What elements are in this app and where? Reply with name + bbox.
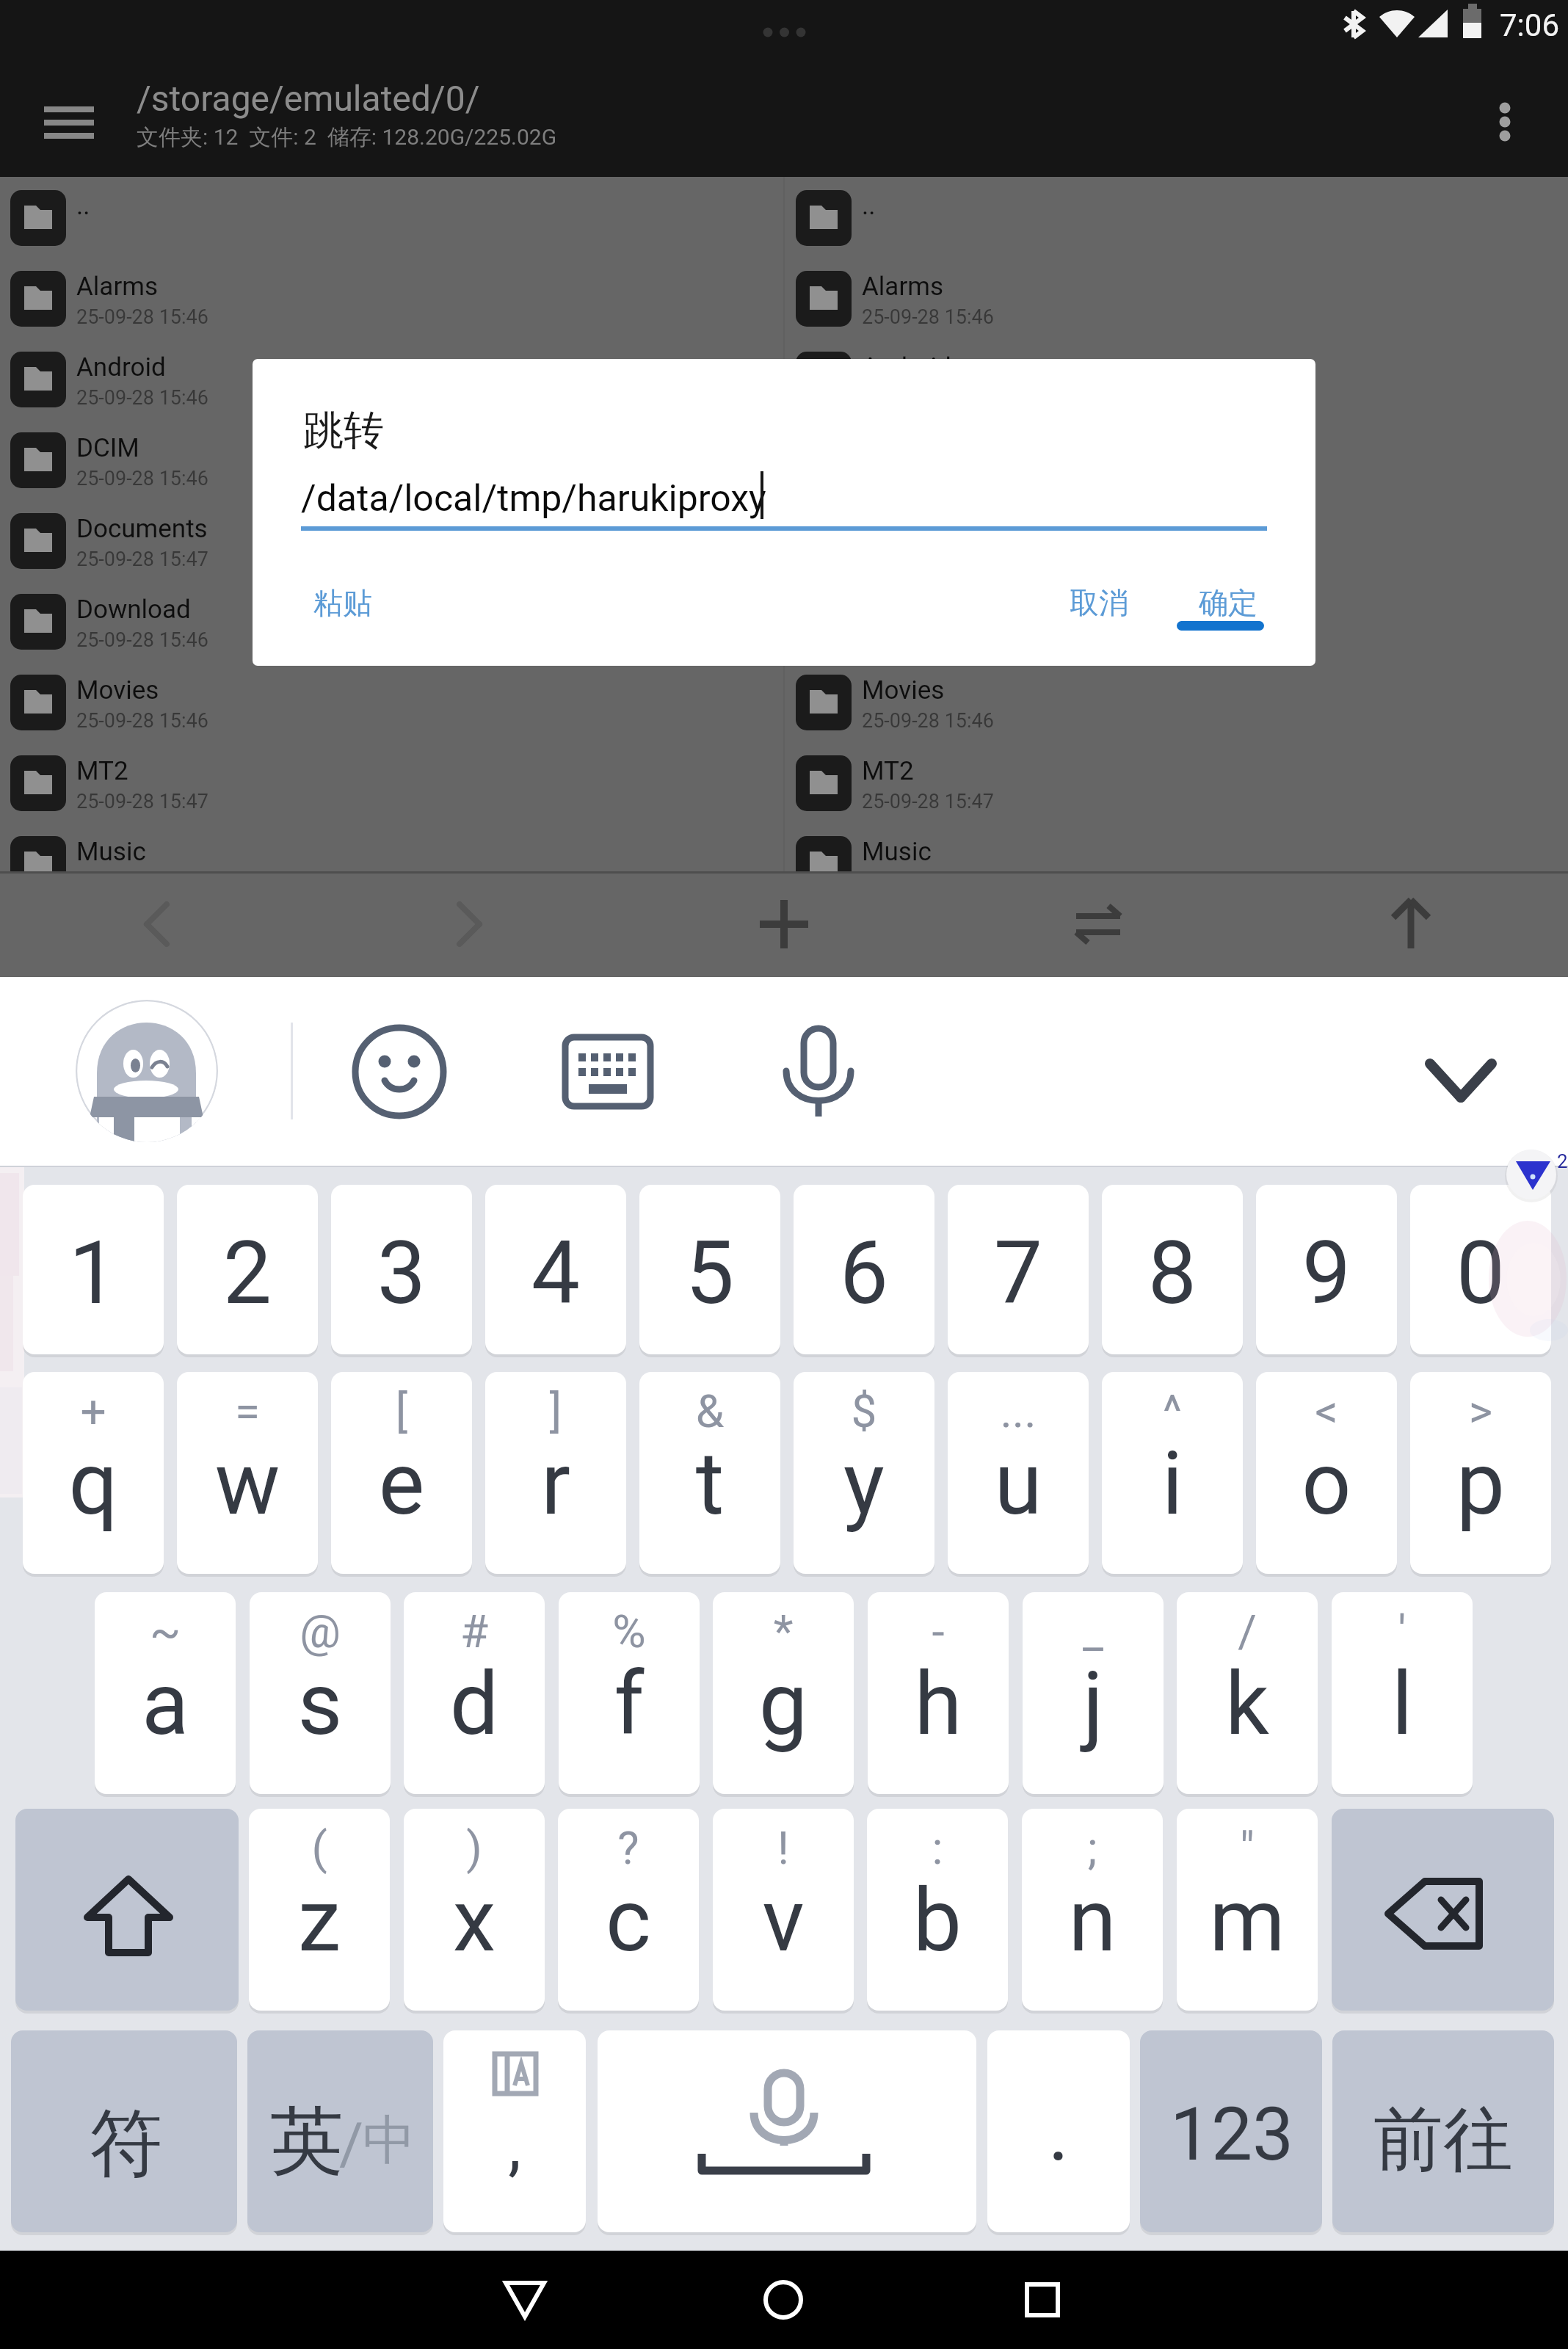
button[interactable]: Shift <box>15 1809 239 2011</box>
button[interactable] <box>284 579 402 653</box>
button[interactable]: Up <box>1332 882 1489 967</box>
button[interactable] <box>0 823 783 871</box>
button[interactable] <box>794 1185 934 1354</box>
button[interactable] <box>785 742 1568 823</box>
button[interactable] <box>1040 579 1158 653</box>
button[interactable] <box>785 177 1568 258</box>
button[interactable] <box>639 1372 780 1574</box>
button[interactable] <box>95 1592 236 1794</box>
button[interactable]: English / Chinese <box>247 2030 433 2232</box>
button[interactable] <box>331 1372 472 1574</box>
button[interactable]: Home <box>725 2261 842 2349</box>
button[interactable]: More options <box>1483 100 1527 144</box>
button[interactable] <box>713 1592 854 1794</box>
button[interactable] <box>1102 1372 1243 1574</box>
button[interactable] <box>785 823 1568 871</box>
button[interactable] <box>1177 1592 1318 1794</box>
button[interactable] <box>23 1372 164 1574</box>
button[interactable] <box>948 1372 1089 1574</box>
staticText: 25-09-28 15:47 <box>862 790 994 813</box>
staticText: * <box>710 1605 857 1658</box>
staticText: Movies <box>76 675 159 705</box>
button[interactable] <box>1332 1592 1473 1794</box>
button[interactable] <box>785 661 1568 742</box>
button[interactable] <box>1102 1185 1243 1354</box>
staticText: i <box>1099 1434 1246 1535</box>
button[interactable]: Comma <box>443 2030 586 2232</box>
staticText: , <box>441 2107 588 2185</box>
button[interactable] <box>868 1592 1009 1794</box>
button[interactable] <box>867 1809 1008 2011</box>
button[interactable] <box>713 1809 854 2011</box>
button[interactable] <box>0 177 783 258</box>
button[interactable]: Space <box>598 2030 976 2232</box>
button[interactable] <box>404 1809 545 2011</box>
button[interactable] <box>23 1185 164 1354</box>
button[interactable] <box>1169 579 1287 653</box>
button[interactable] <box>785 581 1568 661</box>
button[interactable]: Recent apps <box>984 2261 1101 2349</box>
staticText: 文件夹: 12 文件: 2 储存: 128.20G/225.02G <box>137 123 557 151</box>
button[interactable] <box>785 258 1568 338</box>
button[interactable] <box>177 1372 318 1574</box>
button[interactable] <box>1410 1372 1551 1574</box>
button[interactable]: Period <box>987 2030 1130 2232</box>
staticText: Android <box>862 352 951 382</box>
button[interactable]: Emoji <box>348 1020 451 1123</box>
button[interactable] <box>785 338 1568 419</box>
button[interactable] <box>794 1372 934 1574</box>
button[interactable]: New <box>705 882 863 967</box>
button[interactable] <box>1410 1185 1551 1354</box>
staticText: # <box>401 1605 548 1658</box>
staticText: ] <box>482 1384 629 1438</box>
button[interactable] <box>0 338 783 419</box>
button[interactable] <box>177 1185 318 1354</box>
button[interactable]: Numbers <box>1140 2030 1322 2232</box>
button[interactable] <box>1256 1372 1397 1574</box>
button[interactable] <box>639 1185 780 1354</box>
staticText: 7:06 <box>1500 7 1559 43</box>
button[interactable]: Back <box>466 2261 584 2349</box>
button[interactable] <box>331 1185 472 1354</box>
button[interactable] <box>0 500 783 581</box>
button[interactable] <box>785 500 1568 581</box>
staticText: 123 <box>1122 2091 1342 2177</box>
button[interactable] <box>250 1592 391 1794</box>
staticText: 3 <box>328 1223 475 1324</box>
button[interactable]: Go <box>1332 2030 1554 2232</box>
staticText: .. <box>862 191 876 221</box>
staticText: $ <box>791 1384 937 1438</box>
button[interactable] <box>559 1592 700 1794</box>
button[interactable] <box>558 1809 699 2011</box>
staticText: ) <box>401 1821 548 1875</box>
button[interactable] <box>0 742 783 823</box>
button[interactable]: IME profile <box>76 1000 218 1142</box>
button[interactable]: Voice input <box>774 1025 863 1121</box>
button[interactable] <box>1256 1185 1397 1354</box>
staticText: . <box>985 2085 1132 2179</box>
button[interactable] <box>485 1372 626 1574</box>
button[interactable] <box>785 419 1568 500</box>
button[interactable] <box>1023 1592 1164 1794</box>
button[interactable] <box>0 419 783 500</box>
button[interactable] <box>1022 1809 1163 2011</box>
button[interactable] <box>249 1809 390 2011</box>
button[interactable]: Navigation menu <box>43 100 95 144</box>
button[interactable] <box>485 1185 626 1354</box>
staticText: s <box>247 1654 393 1755</box>
staticText: p <box>1407 1434 1554 1535</box>
button[interactable]: Hide keyboard <box>1424 1058 1498 1106</box>
button[interactable]: Backspace <box>1332 1809 1554 2011</box>
button[interactable] <box>0 661 783 742</box>
button[interactable] <box>0 581 783 661</box>
button[interactable]: Symbols <box>11 2030 237 2232</box>
button[interactable] <box>0 258 783 338</box>
button[interactable] <box>948 1185 1089 1354</box>
button[interactable]: Keyboard layout <box>562 1036 653 1108</box>
button[interactable] <box>1177 1809 1318 2011</box>
button[interactable]: Move <box>1020 882 1177 967</box>
button[interactable] <box>404 1592 545 1794</box>
